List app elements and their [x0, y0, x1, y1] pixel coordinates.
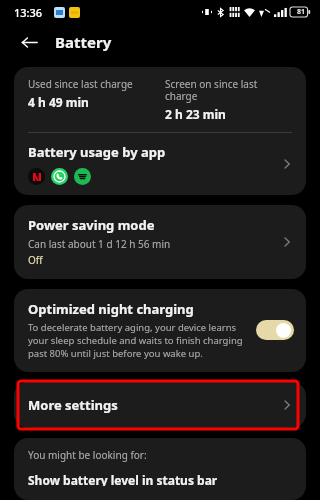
staticText: More settings — [28, 396, 280, 414]
button[interactable]: Optimized night charging — [14, 289, 306, 372]
staticText: Show battery level in status bar — [28, 472, 218, 486]
button[interactable]: More settings — [14, 382, 306, 428]
button[interactable]: Battery usage by app — [14, 133, 306, 195]
staticText: Optimized night charging — [28, 300, 194, 318]
staticText: Off — [28, 253, 43, 267]
staticText: Used since last charge — [28, 77, 133, 91]
staticText: 13:36 — [14, 5, 43, 20]
button[interactable]: Power saving mode — [14, 205, 306, 279]
staticText: Battery usage by app — [28, 143, 166, 161]
button[interactable]: You might be looking for: — [14, 438, 306, 500]
staticText: 81 — [297, 7, 306, 17]
staticText: Screen on since last charge — [165, 77, 292, 103]
button[interactable]: Back — [14, 27, 44, 57]
staticText: Battery — [55, 32, 112, 52]
button[interactable]: Optimized night charging toggle — [256, 320, 294, 340]
staticText: 4 h 49 min — [28, 94, 89, 110]
staticText: You might be looking for: — [28, 448, 147, 462]
staticText: 2 h 23 min — [165, 106, 226, 122]
staticText: Power saving mode — [28, 216, 155, 234]
staticText: Can last about 1 d 12 h 56 min — [28, 237, 171, 251]
staticText: To decelerate battery aging, your device… — [28, 321, 248, 360]
